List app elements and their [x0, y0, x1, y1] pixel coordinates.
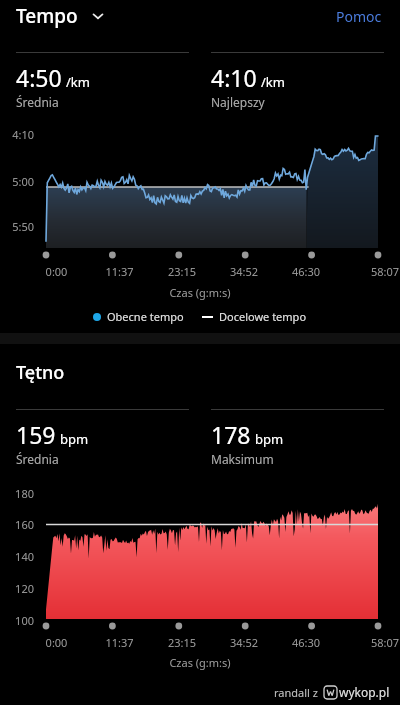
staticText: Średnia	[16, 451, 59, 467]
staticText: 46:30	[275, 635, 337, 650]
staticText: Docelowe tempo	[219, 309, 307, 324]
staticText: Najlepszy	[211, 94, 265, 110]
staticText: 0:00	[25, 264, 88, 279]
staticText: 23:15	[151, 635, 213, 650]
staticText: 178	[211, 419, 251, 450]
staticText: Czas (g:m:s)	[0, 285, 400, 300]
staticText: Tętno	[16, 360, 65, 385]
staticText: Pomoc	[336, 7, 382, 26]
button[interactable]: Pomoc	[332, 3, 386, 30]
staticText: Obecne tempo	[107, 309, 184, 324]
button[interactable]: 4:10	[211, 52, 384, 110]
staticText: 58:07	[337, 264, 399, 279]
staticText: randall z	[274, 685, 318, 700]
staticText: 0:00	[25, 635, 88, 650]
staticText: 160	[0, 517, 34, 532]
staticText: 11:37	[88, 635, 151, 650]
staticText: 11:37	[88, 264, 151, 279]
staticText: 23:15	[151, 264, 213, 279]
staticText: Czas (g:m:s)	[0, 655, 400, 670]
staticText: Tempo	[16, 3, 78, 29]
staticText: wykop.pl	[339, 684, 390, 700]
staticText: 34:52	[213, 264, 275, 279]
other: wykop	[324, 686, 337, 699]
staticText: 58:07	[337, 635, 399, 650]
staticText: 4:50	[16, 62, 62, 93]
staticText: 46:30	[275, 264, 337, 279]
button[interactable]: 159	[16, 409, 189, 467]
staticText: 4:10	[0, 127, 34, 142]
staticText: /km	[261, 73, 285, 91]
staticText: 4:10	[211, 62, 257, 93]
button[interactable]: Tempo	[16, 3, 106, 29]
staticText: 5:50	[0, 219, 34, 234]
button[interactable]: Docelowe tempo	[202, 309, 307, 324]
other: Rozwiń	[90, 8, 106, 24]
button[interactable]: 178	[211, 409, 384, 467]
staticText: bpm	[60, 430, 89, 448]
staticText: /km	[66, 73, 90, 91]
staticText: 34:52	[213, 635, 275, 650]
button[interactable]: 4:50	[16, 52, 189, 110]
staticText: bpm	[255, 430, 284, 448]
staticText: 159	[16, 419, 56, 450]
button[interactable]: Obecne tempo	[93, 309, 184, 324]
staticText: 5:00	[0, 174, 34, 189]
staticText: 140	[0, 549, 34, 564]
staticText: Średnia	[16, 94, 59, 110]
staticText: 180	[0, 486, 34, 501]
staticText: Maksimum	[211, 451, 274, 467]
staticText: 100	[0, 613, 34, 628]
staticText: 120	[0, 581, 34, 596]
